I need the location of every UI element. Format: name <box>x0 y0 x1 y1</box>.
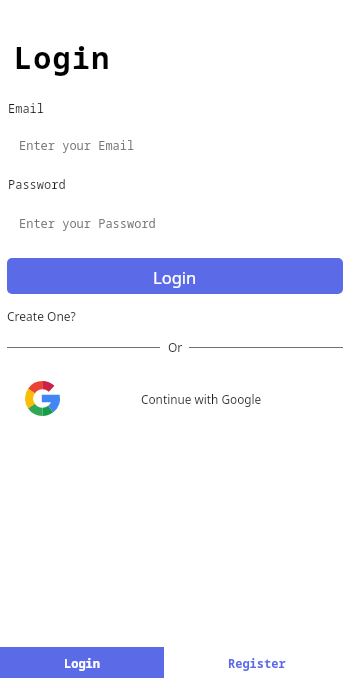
staticText: Register <box>228 655 286 671</box>
staticText: Email <box>8 100 45 116</box>
staticText: Password <box>8 176 66 192</box>
staticText: Enter your Email <box>19 137 135 153</box>
button[interactable]: Sign in with Google <box>25 381 60 416</box>
staticText: Login <box>153 266 197 288</box>
button[interactable]: Login <box>7 258 343 294</box>
staticText: Login <box>64 655 101 671</box>
button[interactable]: Create One? <box>7 308 76 324</box>
button[interactable]: Register <box>164 647 350 678</box>
button[interactable]: Continue with Google <box>141 391 262 407</box>
button[interactable]: Enter your Email <box>0 133 350 157</box>
button[interactable]: Login <box>0 647 164 678</box>
button[interactable]: Enter your Password <box>0 211 350 235</box>
staticText: Login <box>14 37 111 78</box>
staticText: Or <box>168 339 183 355</box>
staticText: Enter your Password <box>19 215 156 231</box>
